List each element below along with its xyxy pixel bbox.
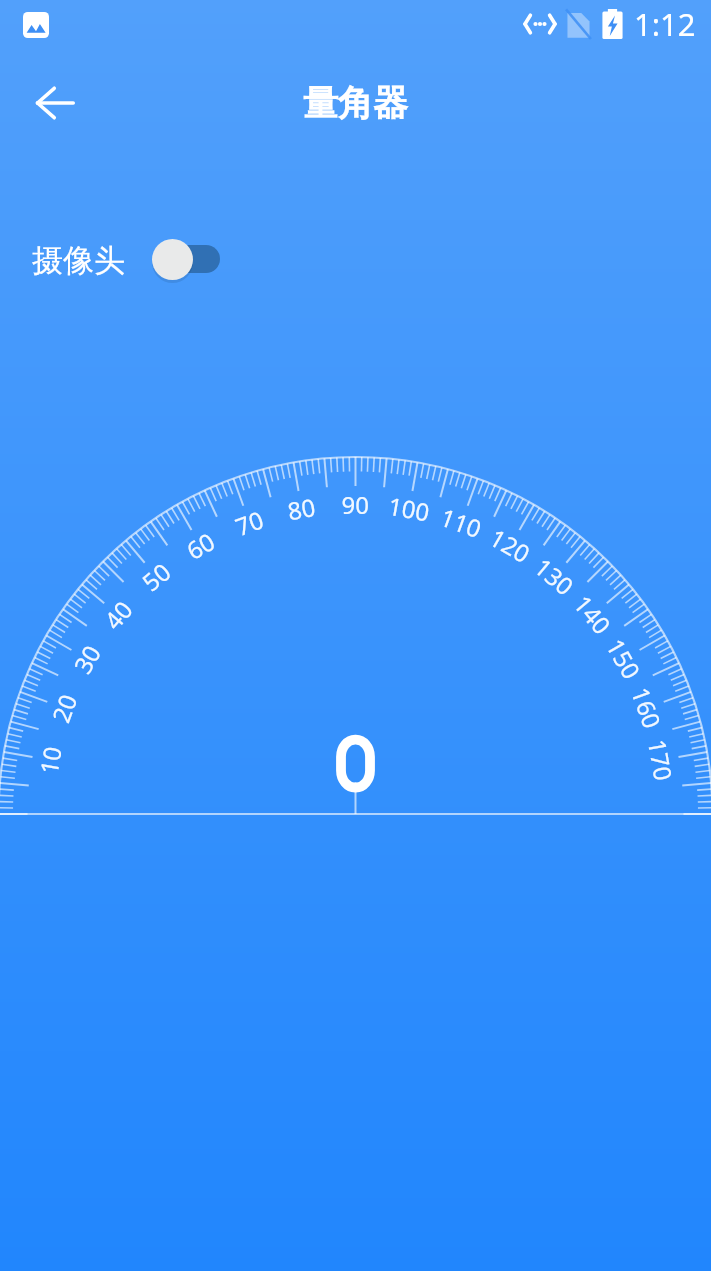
button[interactable]: 摄像头 [24, 232, 210, 288]
staticText: 1:12 [634, 3, 696, 45]
staticText: 量角器 [303, 81, 408, 125]
button[interactable]: Gallery [13, 2, 58, 47]
button[interactable]: Back [20, 68, 90, 138]
staticText: 摄像头 [32, 241, 125, 280]
button[interactable]: Camera toggle [148, 234, 228, 286]
